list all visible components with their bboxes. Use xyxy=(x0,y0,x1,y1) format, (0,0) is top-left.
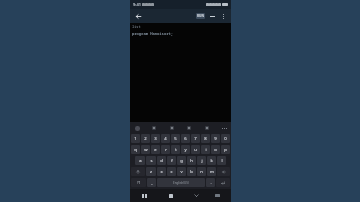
button[interactable]: Space xyxy=(157,178,205,187)
button[interactable]: Voice input xyxy=(185,124,193,132)
staticText: 9 xyxy=(214,136,217,142)
button[interactable]: h xyxy=(187,156,196,165)
staticText: a xyxy=(139,158,142,164)
staticText: i xyxy=(205,147,207,153)
staticText: d xyxy=(160,158,163,164)
button[interactable]: r xyxy=(161,145,170,154)
button[interactable]: Home xyxy=(166,191,175,200)
button[interactable]: Enter xyxy=(216,178,230,187)
button[interactable]: i xyxy=(201,145,210,154)
button[interactable]: l xyxy=(217,156,226,165)
button[interactable]: Hide keyboard xyxy=(213,191,222,200)
button[interactable]: 0 xyxy=(221,134,230,143)
staticText: k xyxy=(210,158,213,164)
button[interactable]: k xyxy=(207,156,216,165)
button[interactable]: g xyxy=(177,156,186,165)
button[interactable]: 6 xyxy=(181,134,190,143)
button[interactable]: x xyxy=(157,167,166,176)
button[interactable]: e xyxy=(151,145,160,154)
staticText: z xyxy=(150,169,152,175)
staticText: x xyxy=(160,169,163,175)
button[interactable]: Recents xyxy=(140,191,149,200)
staticText: 5 xyxy=(174,136,177,142)
staticText: r xyxy=(165,147,167,153)
staticText: p xyxy=(224,147,227,153)
button[interactable]: Search xyxy=(133,124,141,132)
button[interactable]: 7 xyxy=(191,134,200,143)
button[interactable]: s xyxy=(146,156,156,165)
button[interactable]: Backspace xyxy=(217,167,230,176)
staticText: ?1 xyxy=(137,180,141,185)
button[interactable]: w xyxy=(141,145,150,154)
staticText: t xyxy=(175,147,177,153)
staticText: b xyxy=(190,169,193,175)
button[interactable]: Settings xyxy=(203,124,211,132)
staticText: English(US) xyxy=(173,181,189,185)
staticText: , xyxy=(151,180,153,186)
staticText: 0 xyxy=(224,136,227,142)
button[interactable]: 2 xyxy=(141,134,150,143)
button[interactable]: u xyxy=(191,145,200,154)
button[interactable]: Back xyxy=(133,11,144,22)
staticText: 2 xyxy=(144,136,147,142)
staticText: u xyxy=(194,147,197,153)
button[interactable]: q xyxy=(131,145,140,154)
staticText: v xyxy=(180,169,183,175)
button[interactable]: More xyxy=(220,124,228,132)
button[interactable]: 5 xyxy=(171,134,180,143)
button[interactable]: 9 xyxy=(211,134,220,143)
staticText: j xyxy=(201,158,203,164)
button[interactable]: , xyxy=(147,178,156,187)
button[interactable]: y xyxy=(181,145,190,154)
button[interactable]: 8 xyxy=(201,134,210,143)
staticText: 3 xyxy=(154,136,157,142)
staticText: q xyxy=(134,147,137,153)
staticText: 1 xyxy=(134,136,137,142)
button[interactable]: Run xyxy=(196,13,205,19)
staticText: y xyxy=(184,147,187,153)
staticText: 8 xyxy=(204,136,207,142)
staticText: 4 xyxy=(164,136,167,142)
staticText: h xyxy=(190,158,193,164)
staticText: c xyxy=(170,169,173,175)
staticText: o xyxy=(214,147,217,153)
staticText: f xyxy=(171,158,173,164)
button[interactable]: p xyxy=(221,145,230,154)
button[interactable]: b xyxy=(187,167,196,176)
button[interactable]: m xyxy=(207,167,216,176)
button[interactable]: GIF xyxy=(168,124,176,132)
button[interactable]: c xyxy=(167,167,176,176)
button[interactable]: d xyxy=(157,156,166,165)
button[interactable]: 4 xyxy=(161,134,170,143)
button[interactable]: a xyxy=(135,156,145,165)
button[interactable]: f xyxy=(167,156,176,165)
staticText: g xyxy=(180,158,183,164)
staticText: program Hanoisort; xyxy=(132,31,174,36)
button[interactable]: Shift xyxy=(131,167,145,176)
button[interactable]: Minimize xyxy=(208,12,217,21)
button[interactable]: Back xyxy=(192,191,201,200)
button[interactable]: z xyxy=(146,167,156,176)
staticText: e xyxy=(154,147,157,153)
button[interactable]: More options xyxy=(219,12,228,21)
button[interactable]: Stickers xyxy=(150,124,158,132)
staticText: 9:41 xyxy=(133,2,141,7)
staticText: list xyxy=(132,24,141,29)
button[interactable]: n xyxy=(197,167,206,176)
staticText: RUN xyxy=(197,14,205,18)
button[interactable]: . xyxy=(206,178,215,187)
staticText: n xyxy=(200,169,203,175)
staticText: 6 xyxy=(184,136,187,142)
staticText: 7 xyxy=(194,136,197,142)
staticText: w xyxy=(144,147,148,153)
button[interactable]: v xyxy=(177,167,186,176)
button[interactable]: j xyxy=(197,156,206,165)
staticText: l xyxy=(221,158,223,164)
button[interactable]: 3 xyxy=(151,134,160,143)
button[interactable]: t xyxy=(171,145,180,154)
button[interactable]: o xyxy=(211,145,220,154)
staticText: . xyxy=(210,180,212,186)
button[interactable]: Symbols xyxy=(131,178,146,187)
staticText: m xyxy=(210,169,214,175)
button[interactable]: 1 xyxy=(131,134,140,143)
